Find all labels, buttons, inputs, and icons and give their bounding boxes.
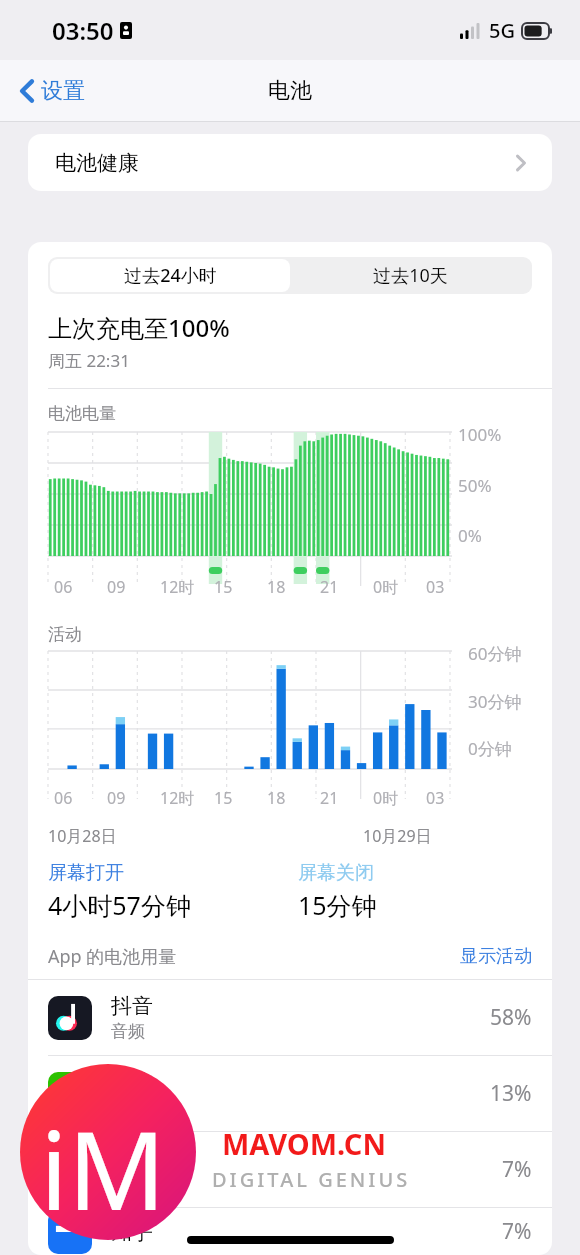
staticText: 21 (320, 576, 339, 598)
staticText: 0% (458, 524, 482, 547)
staticText: 上次充电至100% (48, 311, 230, 344)
staticText: 12时 (160, 787, 195, 809)
staticText: 电池电量 (48, 403, 116, 424)
staticText: 过去10天 (373, 263, 448, 288)
staticText: 09 (107, 787, 126, 809)
staticText: App 的电池用量 (48, 944, 177, 969)
staticText: 15 (214, 576, 233, 598)
other: 抖音 (48, 996, 92, 1040)
button[interactable]: 电池健康 (28, 134, 552, 191)
staticText: 5G (489, 17, 515, 44)
staticText: 活动 (48, 624, 82, 645)
staticText: 屏幕打开 (48, 861, 124, 885)
staticText: 21 (320, 787, 339, 809)
staticText: 30分钟 (468, 690, 522, 713)
staticText: 抖音 (111, 993, 153, 1019)
staticText: 后台活动 (111, 1097, 179, 1118)
button[interactable]: 显示活动 (460, 945, 532, 968)
staticText: 显示活动 (460, 945, 532, 968)
staticText: 09 (107, 576, 126, 598)
staticText: 电池健康 (55, 150, 139, 176)
other: 小红书 (48, 1148, 92, 1192)
staticText: 06 (54, 787, 73, 809)
staticText: 过去24小时 (124, 263, 217, 288)
button[interactable]: 小红书 (28, 1132, 552, 1207)
staticText: iM (40, 1095, 166, 1242)
staticText: 03 (426, 576, 445, 598)
staticText: 15分钟 (298, 888, 377, 922)
staticText: 周五 22:31 (48, 349, 130, 372)
button[interactable]: 过去10天 (290, 259, 530, 292)
staticText: 13% (490, 1079, 532, 1108)
staticText: 50% (458, 474, 492, 497)
staticText: 12时 (160, 576, 195, 598)
staticText: 小红书 (111, 1157, 174, 1183)
staticText: 10月28日 (48, 825, 117, 847)
staticText: 10月29日 (363, 825, 432, 847)
staticText: 100% (458, 423, 502, 446)
other: 微信 (48, 1072, 92, 1116)
staticText: 15 (214, 787, 233, 809)
other: 知乎 (48, 1210, 92, 1254)
staticText: 06 (54, 576, 73, 598)
staticText: 4小时57分钟 (48, 888, 191, 922)
staticText: 7% (502, 1155, 532, 1184)
staticText: 微信 (111, 1069, 153, 1095)
staticText: 音频 (111, 1021, 145, 1042)
button[interactable]: 微信 (28, 1056, 552, 1131)
staticText: 7% (502, 1217, 532, 1246)
staticText: 电池 (268, 77, 312, 105)
staticText: 0分钟 (468, 737, 512, 760)
button[interactable]: 设置 (14, 71, 91, 111)
staticText: 60分钟 (468, 642, 522, 665)
staticText: 18 (267, 576, 286, 598)
staticText: 58% (490, 1003, 532, 1032)
staticText: 0时 (373, 576, 399, 598)
button[interactable]: 抖音 (28, 980, 552, 1055)
staticText: 03 (426, 787, 445, 809)
staticText: 设置 (41, 77, 85, 105)
staticText: DIGITAL GENIUS (212, 1166, 411, 1193)
staticText: MAVOM.CN (222, 1124, 386, 1163)
staticText: 屏幕关闭 (298, 861, 374, 885)
staticText: 知乎 (111, 1219, 153, 1245)
button[interactable]: 过去24小时 (50, 259, 290, 292)
button[interactable]: 知乎 (28, 1208, 552, 1255)
staticText: 03:50 (52, 14, 114, 47)
staticText: 0时 (373, 787, 399, 809)
staticText: 18 (267, 787, 286, 809)
